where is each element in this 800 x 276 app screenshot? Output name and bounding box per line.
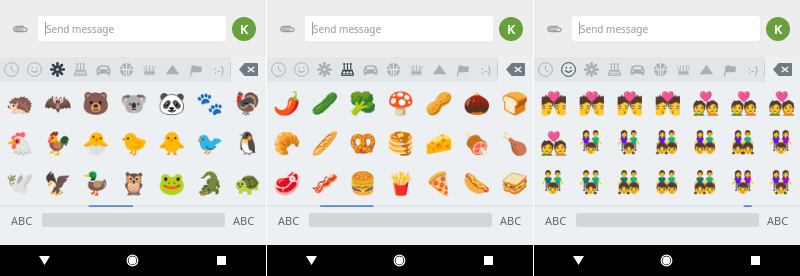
button[interactable]: Category 6 [115,57,138,82]
button[interactable]: Back [0,245,88,276]
button[interactable]: Category 9 [184,57,207,82]
button[interactable]: Category 7 [405,57,428,82]
button[interactable]: Delete [765,57,800,82]
button[interactable]: Category 2 [557,57,580,82]
staticText: K [240,20,249,38]
button[interactable]: Send message [38,16,226,41]
button[interactable]: Category 6 [382,57,405,82]
button[interactable]: Delete [498,57,533,82]
button[interactable]: Back [534,245,622,276]
button[interactable]: ABC [545,213,567,228]
button[interactable]: Category 1 [267,57,290,82]
button[interactable]: Category 3 [580,57,603,82]
button[interactable]: K [499,17,523,41]
staticText: :-) [481,62,491,77]
button[interactable]: Category 5 [359,57,382,82]
button[interactable]: Category 8 [161,57,184,82]
button[interactable]: Attach [541,16,566,41]
button[interactable]: Attach [274,16,299,41]
button[interactable]: Category 5 [92,57,115,82]
button[interactable]: Category 4 [336,57,359,82]
button[interactable]: ABC [233,213,255,228]
button[interactable]: Category 7 [138,57,161,82]
button[interactable]: Category 4 [69,57,92,82]
button[interactable]: ABC [767,213,789,228]
staticText: Send message [46,22,115,36]
staticText: K [507,20,516,38]
button[interactable]: Category 7 [672,57,695,82]
button[interactable]: K [766,17,790,41]
button[interactable]: K [232,17,256,41]
button[interactable]: Home [355,245,444,276]
staticText: Send message [313,22,382,36]
button[interactable]: Recents [177,245,266,276]
button[interactable]: ABC [11,213,33,228]
button[interactable]: Category 3 [46,57,69,82]
button[interactable]: Send message [572,16,760,41]
staticText: K [774,20,783,38]
button[interactable]: Recents [711,245,800,276]
button[interactable]: Back [267,245,355,276]
button[interactable]: Category 1 [534,57,557,82]
button[interactable]: Category 9 [451,57,474,82]
button[interactable]: Emoticons [474,57,497,82]
button[interactable]: Category 4 [603,57,626,82]
button[interactable]: Attach [7,16,32,41]
button[interactable]: Emoticons [741,57,764,82]
button[interactable]: Category 8 [428,57,451,82]
staticText: :-) [214,62,224,77]
button[interactable]: Category 2 [290,57,313,82]
button[interactable]: Category 1 [0,57,23,82]
button[interactable]: Category 2 [23,57,46,82]
button[interactable]: Recents [444,245,533,276]
staticText: :-) [748,62,758,77]
button[interactable]: ABC [278,213,300,228]
button[interactable]: Category 3 [313,57,336,82]
button[interactable]: Category 5 [626,57,649,82]
staticText: Send message [580,22,649,36]
button[interactable]: Category 6 [649,57,672,82]
button[interactable]: Home [88,245,177,276]
button[interactable]: Delete [231,57,266,82]
button[interactable]: Category 8 [695,57,718,82]
button[interactable]: Home [622,245,711,276]
button[interactable]: Send message [305,16,493,41]
button[interactable]: ABC [500,213,522,228]
button[interactable]: Category 9 [718,57,741,82]
button[interactable]: Emoticons [207,57,230,82]
